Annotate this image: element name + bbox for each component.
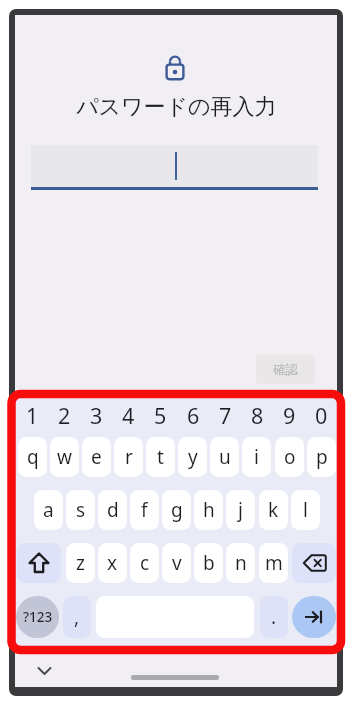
button[interactable]: c [130, 543, 159, 583]
button[interactable]: 8 [241, 398, 273, 432]
staticText: e [91, 444, 102, 470]
staticText: 確認 [273, 362, 298, 378]
staticText: パスワードの再入力 [76, 93, 277, 119]
staticText: j [238, 497, 243, 523]
staticText: o [284, 444, 296, 470]
button[interactable]: e [82, 437, 111, 477]
staticText: x [107, 550, 118, 576]
button[interactable]: v [162, 543, 191, 583]
staticText: d [107, 497, 119, 523]
button[interactable]: n [226, 543, 255, 583]
staticText: g [171, 497, 183, 523]
staticText: m [265, 550, 283, 576]
staticText: 0 [315, 401, 328, 430]
button[interactable]: d [98, 490, 127, 530]
staticText: t [157, 444, 164, 470]
button[interactable] [292, 596, 336, 638]
button[interactable]: y [178, 437, 207, 477]
button[interactable]: 0 [305, 398, 337, 432]
staticText: 3 [90, 401, 103, 430]
button[interactable]: 2 [48, 398, 80, 432]
button[interactable]: x [98, 543, 127, 583]
staticText: w [57, 444, 72, 470]
button[interactable]: w [50, 437, 79, 477]
staticText: f [141, 497, 148, 523]
button[interactable] [17, 543, 61, 583]
staticText: v [172, 550, 182, 576]
button[interactable]: i [242, 437, 271, 477]
staticText: 2 [58, 401, 71, 430]
button[interactable]: h [194, 490, 223, 530]
staticText: 7 [219, 401, 232, 430]
button[interactable]: ?123 [16, 596, 59, 638]
button[interactable]: s [66, 490, 95, 530]
button[interactable]: g [162, 490, 191, 530]
staticText: n [235, 550, 247, 576]
staticText: b [203, 550, 215, 576]
button[interactable]: u [210, 437, 239, 477]
staticText: u [219, 444, 231, 470]
staticText: s [76, 497, 86, 523]
staticText: 9 [283, 401, 296, 430]
staticText: c [140, 550, 150, 576]
button[interactable]: 1 [16, 398, 48, 432]
button[interactable]: j [226, 490, 255, 530]
button[interactable]: . [260, 596, 288, 638]
button[interactable]: p [307, 437, 336, 477]
button[interactable]: 確認 [256, 355, 315, 384]
staticText: , [74, 604, 80, 630]
staticText: r [125, 444, 133, 470]
button[interactable]: , [63, 596, 91, 638]
button[interactable]: 7 [209, 398, 241, 432]
button[interactable]: k [259, 490, 288, 530]
button[interactable]: o [275, 437, 304, 477]
button[interactable] [292, 543, 336, 583]
button[interactable]: m [259, 543, 288, 583]
button[interactable]: t [146, 437, 175, 477]
button[interactable]: 9 [273, 398, 305, 432]
button[interactable]: 5 [144, 398, 176, 432]
staticText: p [316, 444, 328, 470]
staticText: a [43, 497, 54, 523]
staticText: h [203, 497, 215, 523]
staticText: i [254, 444, 259, 470]
button[interactable]: f [130, 490, 159, 530]
staticText: k [268, 497, 279, 523]
staticText: ?123 [23, 608, 53, 626]
staticText: 4 [122, 401, 135, 430]
staticText: 6 [187, 401, 200, 430]
button[interactable]: b [194, 543, 223, 583]
staticText: l [303, 497, 308, 523]
button[interactable]: l [291, 490, 320, 530]
button[interactable]: a [34, 490, 63, 530]
button[interactable]: 6 [177, 398, 209, 432]
button[interactable] [31, 145, 318, 187]
button[interactable]: q [18, 437, 47, 477]
staticText: . [271, 604, 277, 630]
button[interactable]: 4 [112, 398, 144, 432]
button[interactable]: 3 [80, 398, 112, 432]
button[interactable] [30, 658, 58, 684]
staticText: q [27, 444, 39, 470]
staticText: z [76, 550, 85, 576]
staticText: y [188, 444, 198, 470]
button[interactable]: z [66, 543, 95, 583]
staticText: 1 [26, 401, 39, 430]
staticText: 8 [251, 401, 264, 430]
button[interactable]: r [114, 437, 143, 477]
staticText: 5 [154, 401, 167, 430]
